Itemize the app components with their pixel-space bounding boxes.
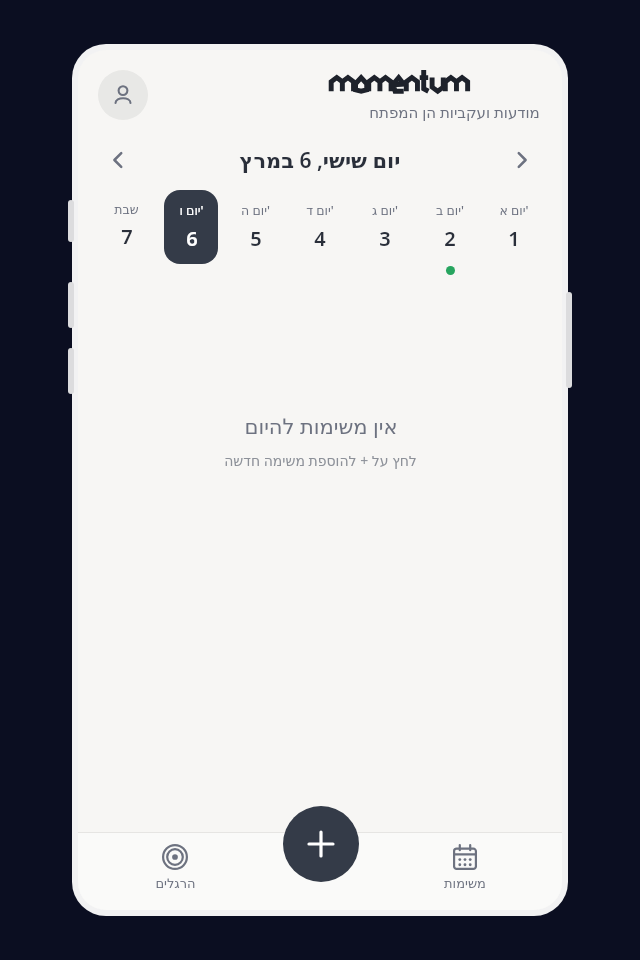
button[interactable]: יום ב' — [423, 190, 477, 264]
staticText: הרגלים — [155, 876, 196, 891]
staticText: יום ו' — [179, 202, 204, 219]
staticText: יום שישי, 6 במרץ — [239, 146, 401, 175]
staticText: אין משימות להיום — [244, 412, 398, 441]
staticText: לחץ על + להוספת משימה חדשה — [224, 451, 417, 470]
staticText: 4 — [314, 225, 326, 252]
button[interactable]: יום ו' — [164, 190, 218, 264]
button[interactable]: משימות — [368, 844, 562, 891]
staticText: 2 — [444, 225, 456, 252]
staticText: יום ב' — [436, 202, 464, 219]
button[interactable]: יום ה' — [228, 190, 282, 264]
button[interactable]: יום ד' — [293, 190, 347, 264]
staticText: 5 — [250, 225, 262, 252]
button[interactable]: הרגלים — [78, 844, 272, 891]
staticText: 1 — [508, 225, 520, 252]
button[interactable]: Previous day — [98, 140, 138, 180]
button[interactable]: Profile — [98, 70, 148, 120]
staticText: 7 — [121, 223, 133, 250]
staticText: יום א' — [499, 202, 529, 219]
staticText: 3 — [379, 225, 391, 252]
staticText: משימות — [444, 876, 486, 891]
staticText: יום ה' — [241, 202, 270, 219]
button[interactable]: שבת — [99, 190, 153, 264]
staticText: 6 — [186, 225, 198, 252]
staticText: שבת — [114, 202, 139, 217]
button[interactable]: Next day — [502, 140, 542, 180]
staticText: יום ד' — [306, 202, 334, 219]
staticText: יום ג' — [372, 202, 398, 219]
button[interactable]: יום ג' — [358, 190, 412, 264]
button[interactable]: Add task — [283, 806, 359, 882]
button[interactable]: יום א' — [487, 190, 541, 264]
staticText: מודעות ועקביות הן המפתח — [369, 102, 540, 122]
